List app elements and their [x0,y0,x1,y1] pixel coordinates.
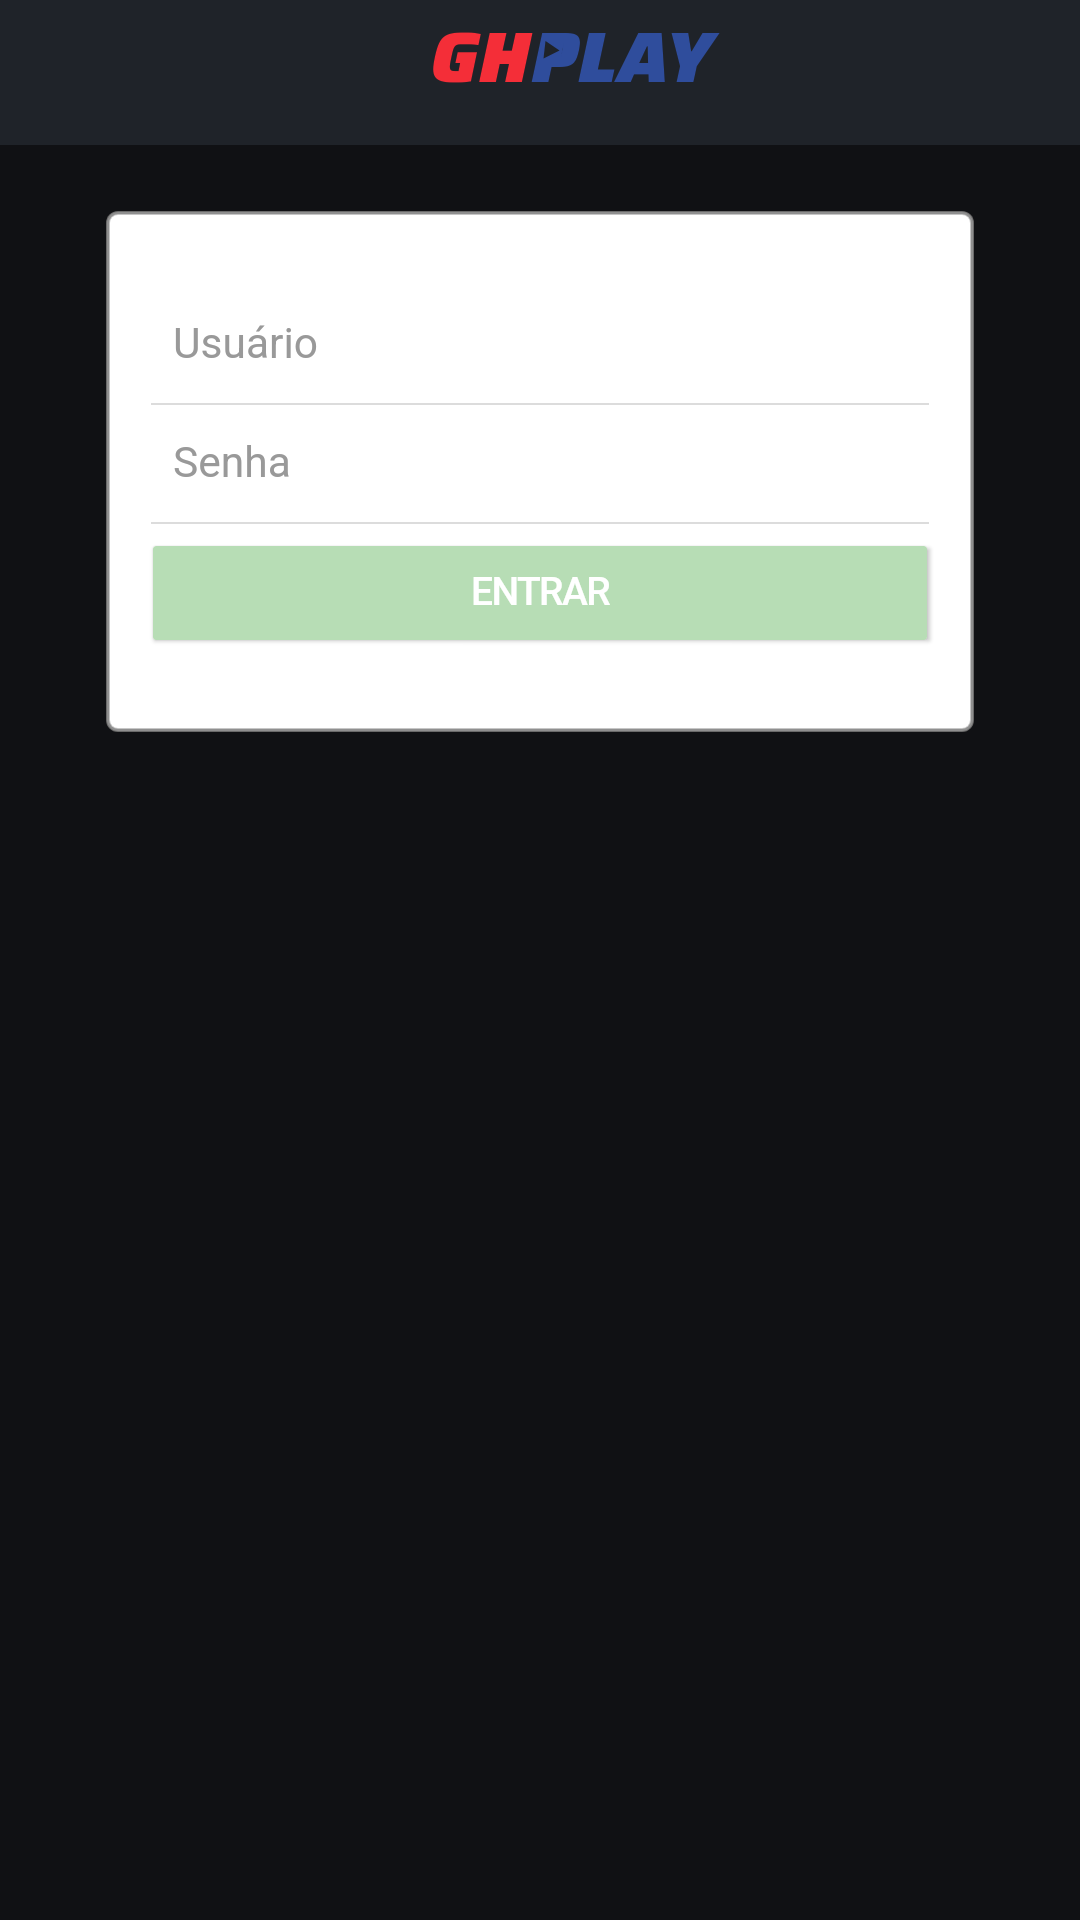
staticText: PLAY [532,0,715,113]
button[interactable]: Usuário [151,286,929,403]
other: GHPLAY [431,0,715,113]
staticText: Senha [173,438,291,488]
staticText: ENTRAR [471,569,610,615]
staticText: GH [431,0,532,113]
button[interactable]: Senha [151,405,929,522]
staticText: Usuário [173,319,319,369]
button[interactable]: ENTRAR [153,546,927,640]
